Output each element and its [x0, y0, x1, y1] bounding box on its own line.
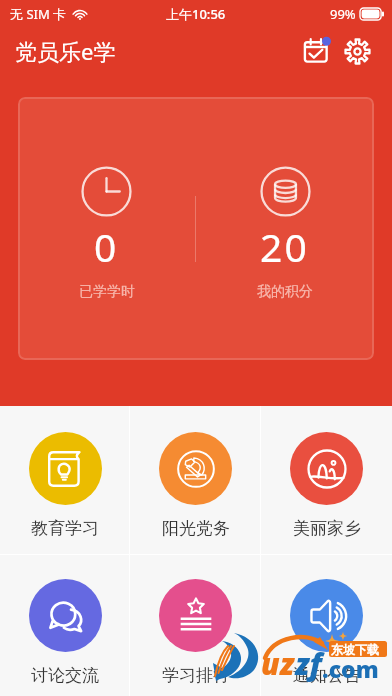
staticText: 学习排行 [162, 665, 230, 686]
staticText: zf [295, 643, 322, 684]
button[interactable]: 0 [18, 97, 195, 360]
staticText: 已学学时 [79, 283, 135, 301]
staticText: 99% [330, 5, 356, 23]
staticText: 上午10:56 [166, 5, 226, 23]
staticText: 东坡下载 [331, 642, 379, 657]
staticText: 0 [94, 220, 119, 273]
button[interactable]: 讨论交流 [0, 555, 130, 696]
button[interactable]: Tasks [298, 33, 334, 69]
staticText: 20 [260, 220, 310, 273]
button[interactable]: Settings [339, 33, 375, 69]
staticText: 通知公告 [293, 665, 361, 686]
staticText: 美丽家乡 [293, 518, 361, 539]
button[interactable]: 阳光党务 [130, 406, 261, 554]
staticText: 我的积分 [257, 283, 313, 301]
staticText: .com [322, 653, 379, 684]
staticText: 教育学习 [31, 518, 99, 539]
button[interactable]: 美丽家乡 [261, 406, 392, 554]
staticText: uz [261, 643, 295, 684]
button[interactable]: 学习排行 [130, 555, 261, 696]
button[interactable]: 教育学习 [0, 406, 130, 554]
button[interactable]: 20 [196, 97, 374, 360]
staticText: 党员乐e学 [15, 36, 116, 66]
staticText: 无 SIM 卡 [10, 5, 67, 23]
button[interactable]: 通知公告 [261, 555, 392, 696]
staticText: 阳光党务 [162, 518, 230, 539]
staticText: 讨论交流 [31, 665, 99, 686]
